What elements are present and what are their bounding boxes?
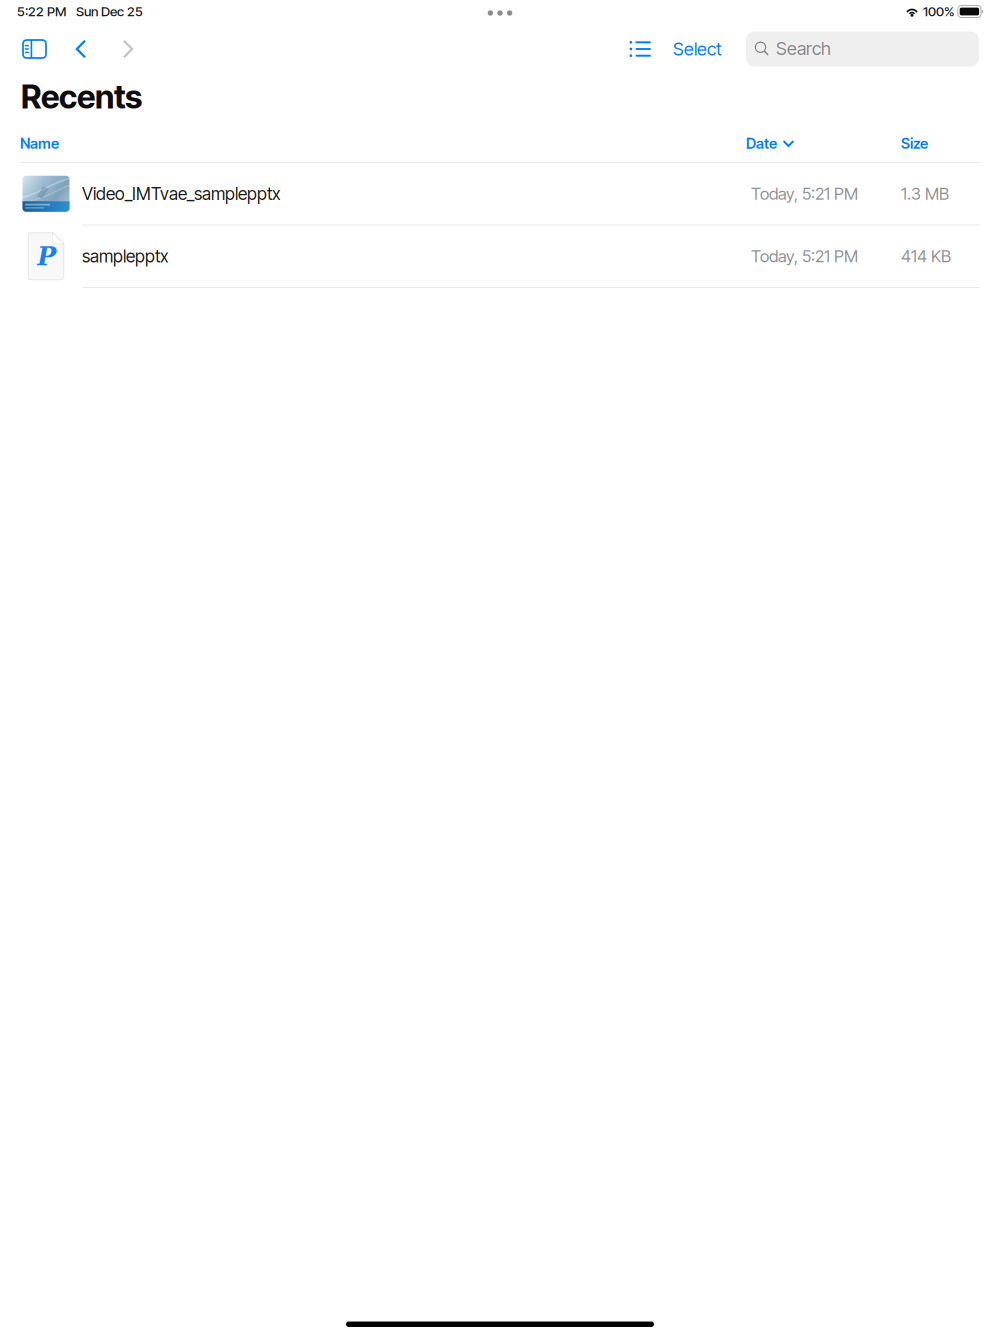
staticText: 1.3 MB <box>901 184 949 204</box>
staticText: Today, 5:21 PM <box>751 246 858 266</box>
staticText: Today, 5:21 PM <box>751 184 858 204</box>
button[interactable]: Back <box>70 34 91 64</box>
button[interactable]: Date <box>751 135 901 152</box>
button[interactable]: Name <box>20 135 59 152</box>
staticText: Name <box>20 135 59 152</box>
staticText: P <box>37 241 56 271</box>
button[interactable]: Forward <box>117 34 138 64</box>
button[interactable]: Video_IMTvae_samplepptx <box>0 163 1000 225</box>
staticText: Sun Dec 25 <box>76 3 143 19</box>
staticText: 5:22 PM <box>17 3 66 19</box>
button[interactable]: Size <box>901 135 980 152</box>
staticText: Search <box>776 38 831 59</box>
button[interactable]: View Options <box>623 35 657 63</box>
button[interactable]: Select <box>669 34 726 64</box>
staticText: Video_IMTvae_samplepptx <box>82 183 281 204</box>
staticText: Select <box>673 38 722 60</box>
staticText: Recents <box>21 77 142 116</box>
button[interactable]: samplepptx <box>0 225 1000 288</box>
button[interactable]: Search <box>746 31 979 66</box>
staticText: Size <box>901 135 928 152</box>
staticText: samplepptx <box>82 246 169 267</box>
staticText: Date <box>746 135 777 152</box>
staticText: 100% <box>923 3 954 19</box>
button[interactable]: Toggle Sidebar <box>18 35 51 63</box>
staticText: 414 KB <box>901 246 951 266</box>
